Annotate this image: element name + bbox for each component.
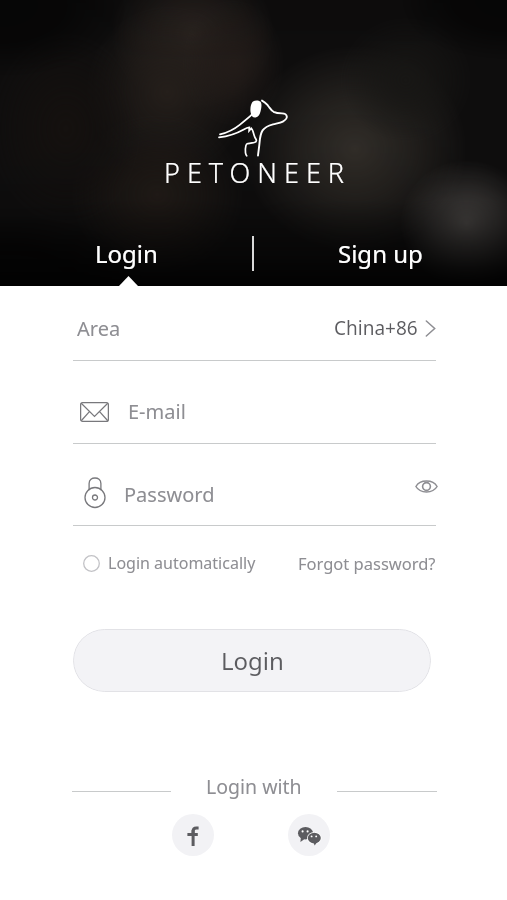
button[interactable]: Sign in with Facebook (172, 814, 214, 856)
staticText: Login automatically (108, 552, 256, 574)
staticText: Login (221, 644, 284, 677)
button[interactable]: Login (73, 629, 431, 692)
staticText: Sign up (338, 237, 423, 270)
button[interactable]: Sign in with WeChat (288, 814, 330, 856)
button[interactable]: Login automatically (73, 552, 256, 574)
button[interactable]: E-mail (73, 361, 436, 443)
button[interactable]: Login (0, 225, 252, 281)
button[interactable]: Forgot password? (298, 552, 436, 574)
staticText: Area (77, 315, 121, 342)
button[interactable]: Sign up (254, 225, 507, 281)
staticText: E-mail (128, 398, 186, 425)
button[interactable]: Show password (415, 479, 438, 494)
staticText: Login with (206, 773, 302, 799)
staticText: PETONEER (164, 154, 352, 191)
button[interactable]: China+86 (334, 315, 436, 341)
staticText: Password (124, 481, 215, 508)
staticText: Login (95, 237, 158, 270)
staticText: China+86 (334, 315, 418, 341)
button[interactable]: Password (73, 444, 436, 525)
button[interactable]: Area (73, 286, 436, 360)
